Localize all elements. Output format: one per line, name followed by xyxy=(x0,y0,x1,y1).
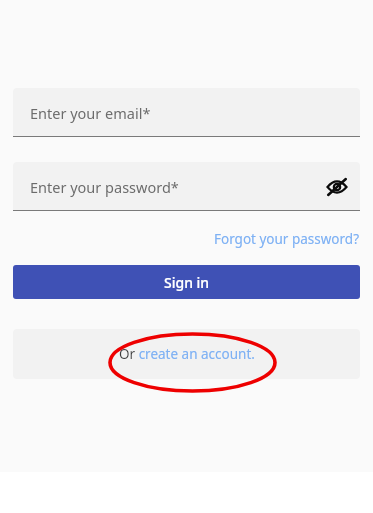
button[interactable]: Enter your password* xyxy=(13,162,360,211)
staticText: Enter your password* xyxy=(30,177,179,197)
button[interactable]: Or create an account. xyxy=(111,337,263,371)
button[interactable]: Forgot your password? xyxy=(212,227,362,251)
staticText: Forgot your password? xyxy=(214,230,360,248)
button[interactable]: Sign in xyxy=(13,265,360,299)
button[interactable]: Enter your email* xyxy=(13,88,360,137)
staticText: Enter your email* xyxy=(30,103,151,123)
staticText: Or create an account. xyxy=(119,345,255,363)
button[interactable]: Show password xyxy=(318,168,356,206)
staticText: Sign in xyxy=(164,273,210,292)
